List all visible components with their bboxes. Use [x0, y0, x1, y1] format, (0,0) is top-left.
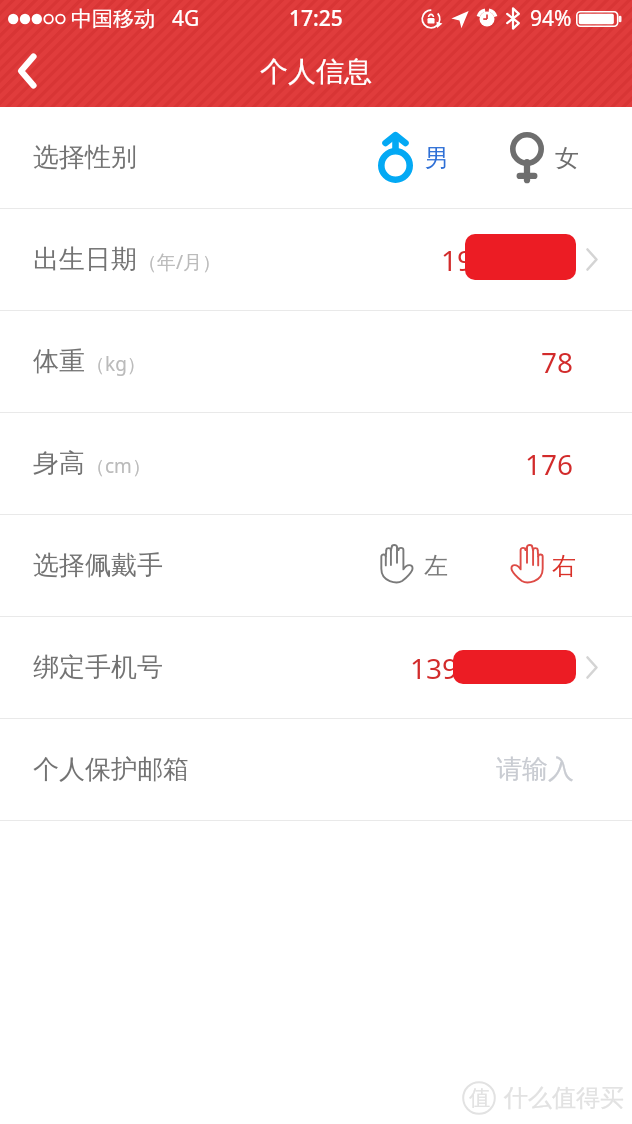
staticText: （kg）: [86, 351, 146, 377]
button[interactable]: 出生日期: [0, 209, 632, 310]
staticText: 19: [441, 241, 474, 279]
staticText: 绑定手机号: [33, 651, 163, 684]
staticText: 男: [425, 143, 449, 173]
staticText: 出生日期: [33, 243, 137, 276]
staticText: 体重: [33, 345, 85, 378]
button[interactable]: Female: [510, 132, 579, 183]
staticText: （年/月）: [138, 249, 222, 275]
staticText: 身高: [33, 447, 85, 480]
staticText: 个人信息: [260, 54, 372, 89]
staticText: 176: [525, 445, 574, 483]
staticText: 左: [424, 551, 448, 581]
staticText: 右: [552, 551, 576, 581]
staticText: 请输入: [496, 753, 574, 786]
button[interactable]: 绑定手机号: [0, 617, 632, 718]
staticText: 94%: [530, 4, 572, 33]
button[interactable]: Back: [0, 44, 54, 98]
staticText: 17:25: [289, 4, 343, 33]
staticText: 什么值得买: [504, 1083, 624, 1113]
staticText: 女: [555, 143, 579, 173]
button[interactable]: 个人保护邮箱: [0, 719, 632, 820]
staticText: 个人保护邮箱: [33, 753, 189, 786]
button[interactable]: 体重: [0, 311, 632, 412]
staticText: 139: [410, 649, 459, 687]
staticText: 4G: [172, 4, 200, 33]
button[interactable]: Male: [378, 132, 449, 183]
staticText: 值: [469, 1085, 490, 1111]
staticText: 中国移动: [71, 6, 155, 32]
staticText: 选择性别: [33, 141, 137, 174]
button[interactable]: Left hand: [381, 546, 448, 586]
button[interactable]: 身高: [0, 413, 632, 514]
button[interactable]: Right hand: [510, 546, 576, 586]
staticText: 78: [541, 343, 574, 381]
staticText: （cm）: [86, 453, 151, 479]
staticText: 选择佩戴手: [33, 549, 163, 582]
